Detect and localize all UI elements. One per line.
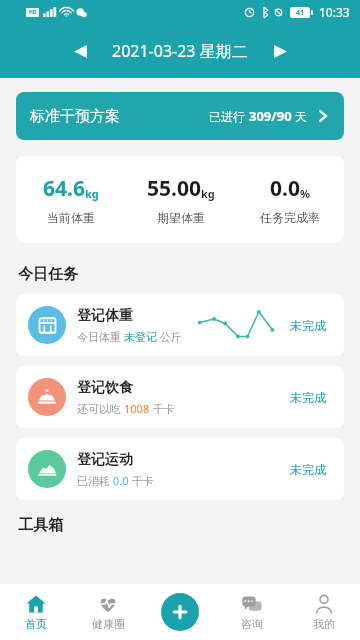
button[interactable]: Next day [266,37,294,65]
staticText: 未完成 [290,390,332,405]
button[interactable]: 登记体重 [16,294,344,356]
staticText: 1008 [124,401,150,416]
staticText: 首页 [25,617,47,631]
staticText: 公斤 [157,329,182,344]
staticText: 已进行 [209,108,249,124]
staticText: 已消耗 [77,473,113,488]
staticText: 未完成 [290,318,332,333]
staticText: 千卡 [129,473,154,488]
button[interactable]: 首页 [0,584,72,640]
staticText: 2021-03-23 星期二 [112,40,248,62]
staticText: 未登记 [124,330,157,344]
staticText: 10:33 [319,4,350,20]
staticText: 健康圈 [92,617,125,631]
staticText: kg [201,186,215,201]
staticText: 未完成 [290,462,332,477]
button[interactable]: Add record [161,593,199,631]
staticText: 309/90 [249,107,292,125]
button[interactable]: 登记饮食 [16,366,344,428]
staticText: 今日任务 [18,265,78,284]
button[interactable]: 标准干预方案 [16,92,344,140]
staticText: 55.00 [147,174,201,203]
staticText: 工具箱 [18,516,63,535]
staticText: 0.0 [270,174,300,203]
button[interactable]: 健康圈 [72,584,144,640]
staticText: 今日体重 [77,329,124,344]
staticText: 64.6 [43,174,85,203]
staticText: HD [29,9,37,16]
staticText: 期望体重 [157,210,205,225]
staticText: 标准干预方案 [30,107,120,126]
staticText: 千卡 [150,401,175,416]
staticText: 还可以吃 [77,401,124,416]
staticText: 41 [296,8,305,18]
staticText: 登记饮食 [77,379,133,397]
staticText: 登记运动 [77,451,133,469]
button[interactable]: 咨询 [216,584,288,640]
staticText: 我的 [313,617,335,631]
button[interactable]: 我的 [288,584,360,640]
staticText: kg [85,186,99,201]
staticText: 任务完成率 [260,210,320,225]
staticText: 当前体重 [47,210,95,225]
staticText: 咨询 [241,617,263,631]
staticText: 天 [292,108,308,124]
staticText: 登记体重 [77,307,133,325]
staticText: 0.0 [113,473,129,488]
staticText: % [300,186,310,201]
button[interactable]: Previous day [66,37,94,65]
button[interactable]: 登记运动 [16,438,344,500]
